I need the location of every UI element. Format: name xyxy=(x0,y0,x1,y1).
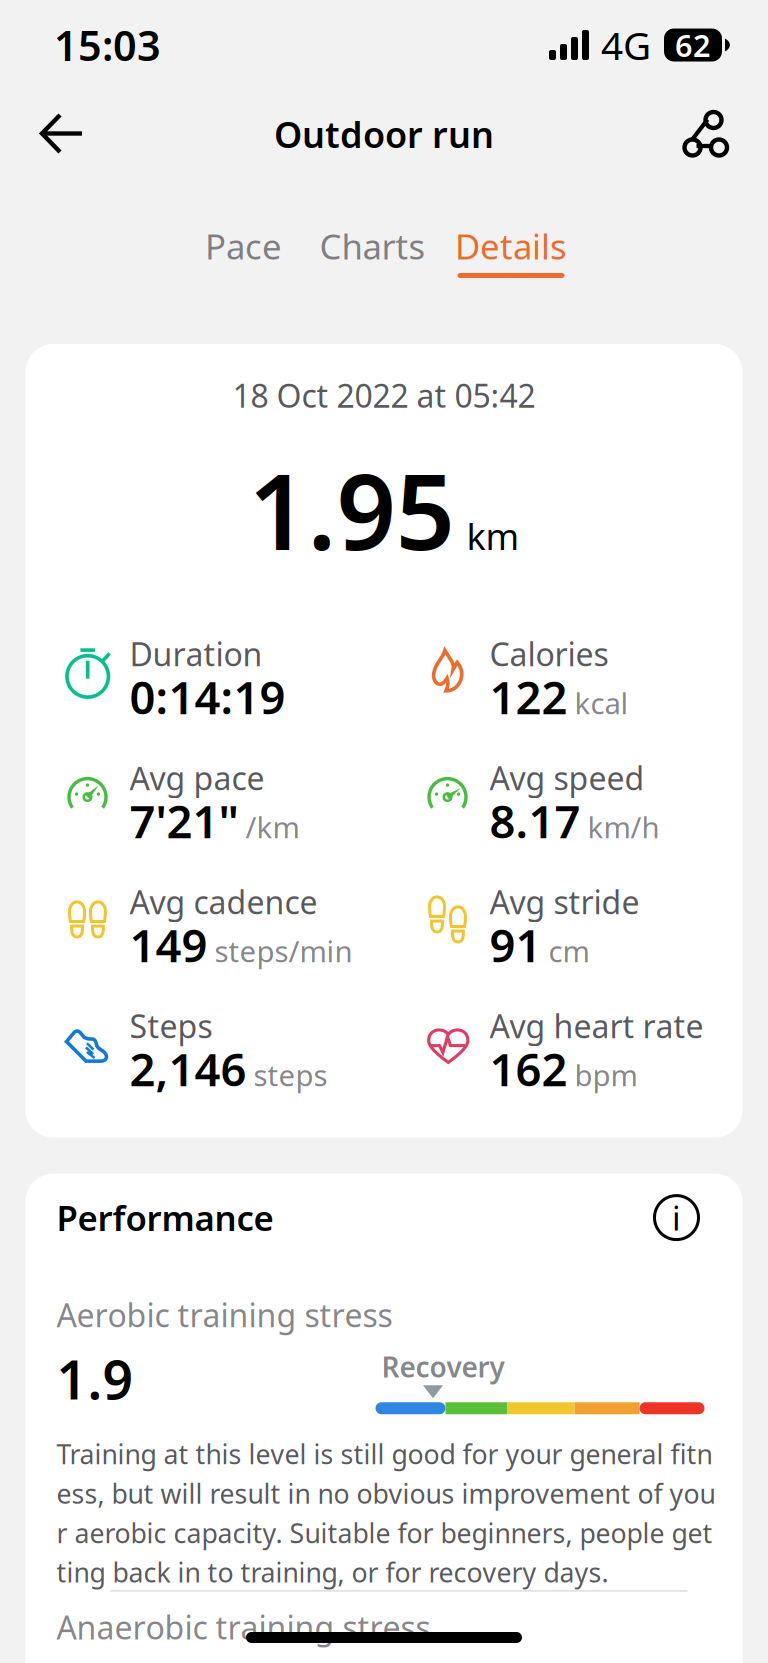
staticText: ess, but will result in no obvious impro… xyxy=(56,1476,715,1511)
staticText: 62 xyxy=(675,25,711,65)
button[interactable]: Pace xyxy=(200,223,286,284)
staticText: ting back in to training, or for recover… xyxy=(56,1554,608,1590)
staticText: 4G xyxy=(601,19,651,71)
staticText: i xyxy=(672,1195,681,1240)
staticText: Avg speed xyxy=(489,757,644,799)
staticText: 18 Oct 2022 at 05:42 xyxy=(232,374,535,416)
staticText: Outdoor run xyxy=(274,110,494,158)
staticText: Avg heart rate xyxy=(489,1005,703,1047)
staticText: r aerobic capacity. Suitable for beginne… xyxy=(56,1515,712,1550)
staticText: 149 xyxy=(129,915,207,975)
staticText: Pace xyxy=(205,223,282,269)
staticText: Training at this level is still good for… xyxy=(56,1436,712,1472)
staticText: steps xyxy=(253,1055,327,1094)
staticText: Anaerobic training stress xyxy=(56,1606,430,1648)
staticText: 7'21" xyxy=(129,791,238,851)
staticText: 15:03 xyxy=(54,18,161,72)
staticText: Avg pace xyxy=(129,757,264,799)
staticText: Calories xyxy=(489,633,608,675)
button[interactable]: Information xyxy=(659,1192,711,1244)
staticText: Aerobic training stress xyxy=(56,1294,392,1336)
staticText: Avg cadence xyxy=(129,881,317,923)
staticText: cm xyxy=(548,931,589,970)
staticText: 8.17 xyxy=(489,791,580,851)
button[interactable]: Back xyxy=(24,101,100,167)
staticText: steps/min xyxy=(214,931,352,970)
staticText: Details xyxy=(455,223,567,269)
staticText: Recovery xyxy=(381,1348,504,1385)
staticText: 1.95 xyxy=(248,440,454,579)
staticText: 2,146 xyxy=(129,1039,246,1099)
staticText: km xyxy=(466,512,519,560)
staticText: Steps xyxy=(129,1005,212,1047)
button[interactable]: Charts xyxy=(318,223,426,284)
staticText: kcal xyxy=(574,683,628,722)
staticText: /km xyxy=(245,807,299,846)
staticText: Charts xyxy=(319,223,425,269)
staticText: Avg stride xyxy=(489,881,639,923)
staticText: 91 xyxy=(489,915,541,975)
button[interactable]: Share xyxy=(664,99,744,169)
staticText: Duration xyxy=(129,633,262,675)
staticText: 162 xyxy=(489,1039,567,1099)
staticText: bpm xyxy=(574,1055,637,1094)
button[interactable]: Details xyxy=(454,223,567,284)
staticText: 0:14:19 xyxy=(129,667,285,727)
staticText: Performance xyxy=(56,1195,273,1241)
staticText: 122 xyxy=(489,667,567,727)
staticText: 1.9 xyxy=(56,1343,133,1414)
staticText: km/h xyxy=(587,807,659,846)
